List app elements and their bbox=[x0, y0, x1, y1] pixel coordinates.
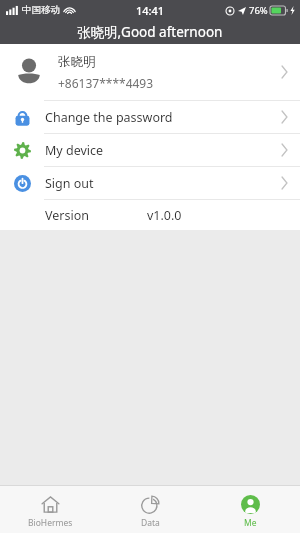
staticText: 张晓明 bbox=[58, 54, 96, 70]
staticText: BioHermes bbox=[28, 517, 73, 529]
staticText: Data bbox=[141, 517, 160, 529]
staticText: Me bbox=[244, 517, 257, 529]
staticText: 张晓明,Good afternoon bbox=[77, 23, 223, 41]
staticText: 14:41 bbox=[136, 3, 165, 18]
button[interactable]: Change the password bbox=[0, 101, 300, 133]
staticText: Sign out bbox=[45, 175, 94, 192]
staticText: +86137****4493 bbox=[58, 75, 154, 91]
button[interactable]: Sign out bbox=[0, 167, 300, 199]
button[interactable]: BioHermes bbox=[0, 486, 100, 533]
button[interactable]: 张晓明 bbox=[0, 44, 300, 100]
staticText: Version bbox=[45, 207, 89, 224]
staticText: 中国移动 bbox=[22, 4, 60, 16]
staticText: v1.0.0 bbox=[147, 207, 182, 224]
button[interactable]: Me bbox=[200, 486, 300, 533]
button[interactable]: Data bbox=[100, 486, 200, 533]
staticText: Change the password bbox=[45, 109, 173, 126]
button[interactable]: My device bbox=[0, 134, 300, 166]
staticText: My device bbox=[45, 142, 104, 159]
staticText: 76% bbox=[249, 4, 268, 17]
